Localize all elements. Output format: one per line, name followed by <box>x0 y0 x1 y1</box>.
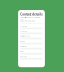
staticText: Message <box>20 56 27 57</box>
staticText: Phone <box>20 40 25 42</box>
staticText: Role <box>20 51 23 52</box>
staticText: First name <box>20 25 27 27</box>
staticText: Last name <box>20 30 27 32</box>
staticText: get back to you quickly. <box>20 20 35 22</box>
staticText: Email address <box>20 35 30 37</box>
staticText: Company <box>20 46 27 47</box>
staticText: Contact details <box>20 13 42 16</box>
staticText: Tell us a little about yourself so we ca… <box>20 17 40 20</box>
